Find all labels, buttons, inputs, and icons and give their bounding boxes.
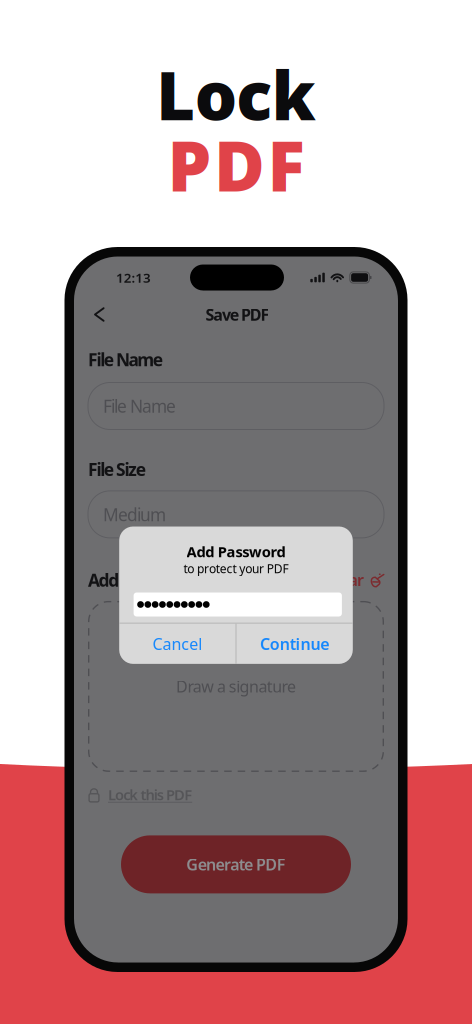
button[interactable]: Cancel — [119, 624, 235, 664]
staticText: File Name — [88, 348, 163, 371]
staticText: Save PDF — [205, 304, 269, 325]
staticText: Continue — [260, 633, 329, 654]
staticText: Clear — [326, 569, 364, 590]
staticText: Lock this PDF — [108, 785, 192, 804]
button[interactable]: Generate PDF — [121, 835, 351, 893]
staticText: Add Password — [187, 542, 285, 561]
staticText: PDF — [167, 118, 304, 211]
button[interactable]: Lock this PDF — [88, 785, 192, 804]
staticText: 12:13 — [116, 269, 151, 286]
staticText: Lock — [156, 50, 316, 138]
staticText: to protect your PDF — [183, 560, 289, 576]
staticText: Medium — [103, 503, 166, 526]
staticText: File Size — [88, 458, 146, 481]
button[interactable]: Back — [86, 301, 113, 328]
button[interactable]: Clear — [326, 569, 384, 590]
staticText: Generate PDF — [186, 854, 286, 875]
button[interactable]: Continue — [236, 624, 353, 664]
staticText: Draw a signature — [176, 676, 296, 697]
staticText: File Name — [103, 394, 176, 417]
staticText: Cancel — [153, 633, 202, 654]
staticText: Add Signature — [88, 568, 193, 591]
